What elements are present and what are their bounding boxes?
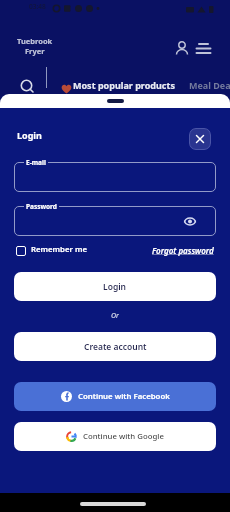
button[interactable]: Meal Dea [189,79,230,91]
button[interactable] [16,246,26,256]
staticText: Or [111,311,119,321]
staticText: E-mail [26,158,46,167]
button[interactable]: Create account [14,332,216,361]
staticText: Most popular products [73,79,175,91]
button[interactable] [189,128,211,150]
button[interactable] [19,78,35,94]
staticText: 03:48 [29,2,46,11]
staticText: Remember me [31,244,88,255]
staticText: Password [26,202,57,211]
staticText: Continue with Google [83,431,164,442]
staticText: Fryer [25,46,45,56]
button[interactable]: Login [14,272,216,301]
staticText: Login [103,281,127,293]
staticText: Continue with Facebook [78,391,170,402]
button[interactable] [14,162,216,192]
button[interactable] [195,42,213,55]
button[interactable]: Continue with Facebook [14,382,216,411]
staticText: Login [17,129,42,141]
button[interactable]: Most popular products [73,79,175,91]
button[interactable]: Continue with Google [14,422,216,451]
button[interactable] [14,206,216,236]
button[interactable]: Forgot password [152,245,214,256]
staticText: Create account [84,341,147,353]
button[interactable] [174,40,190,56]
button[interactable]: Tuebrook [17,36,53,56]
staticText: Tuebrook [17,36,53,46]
